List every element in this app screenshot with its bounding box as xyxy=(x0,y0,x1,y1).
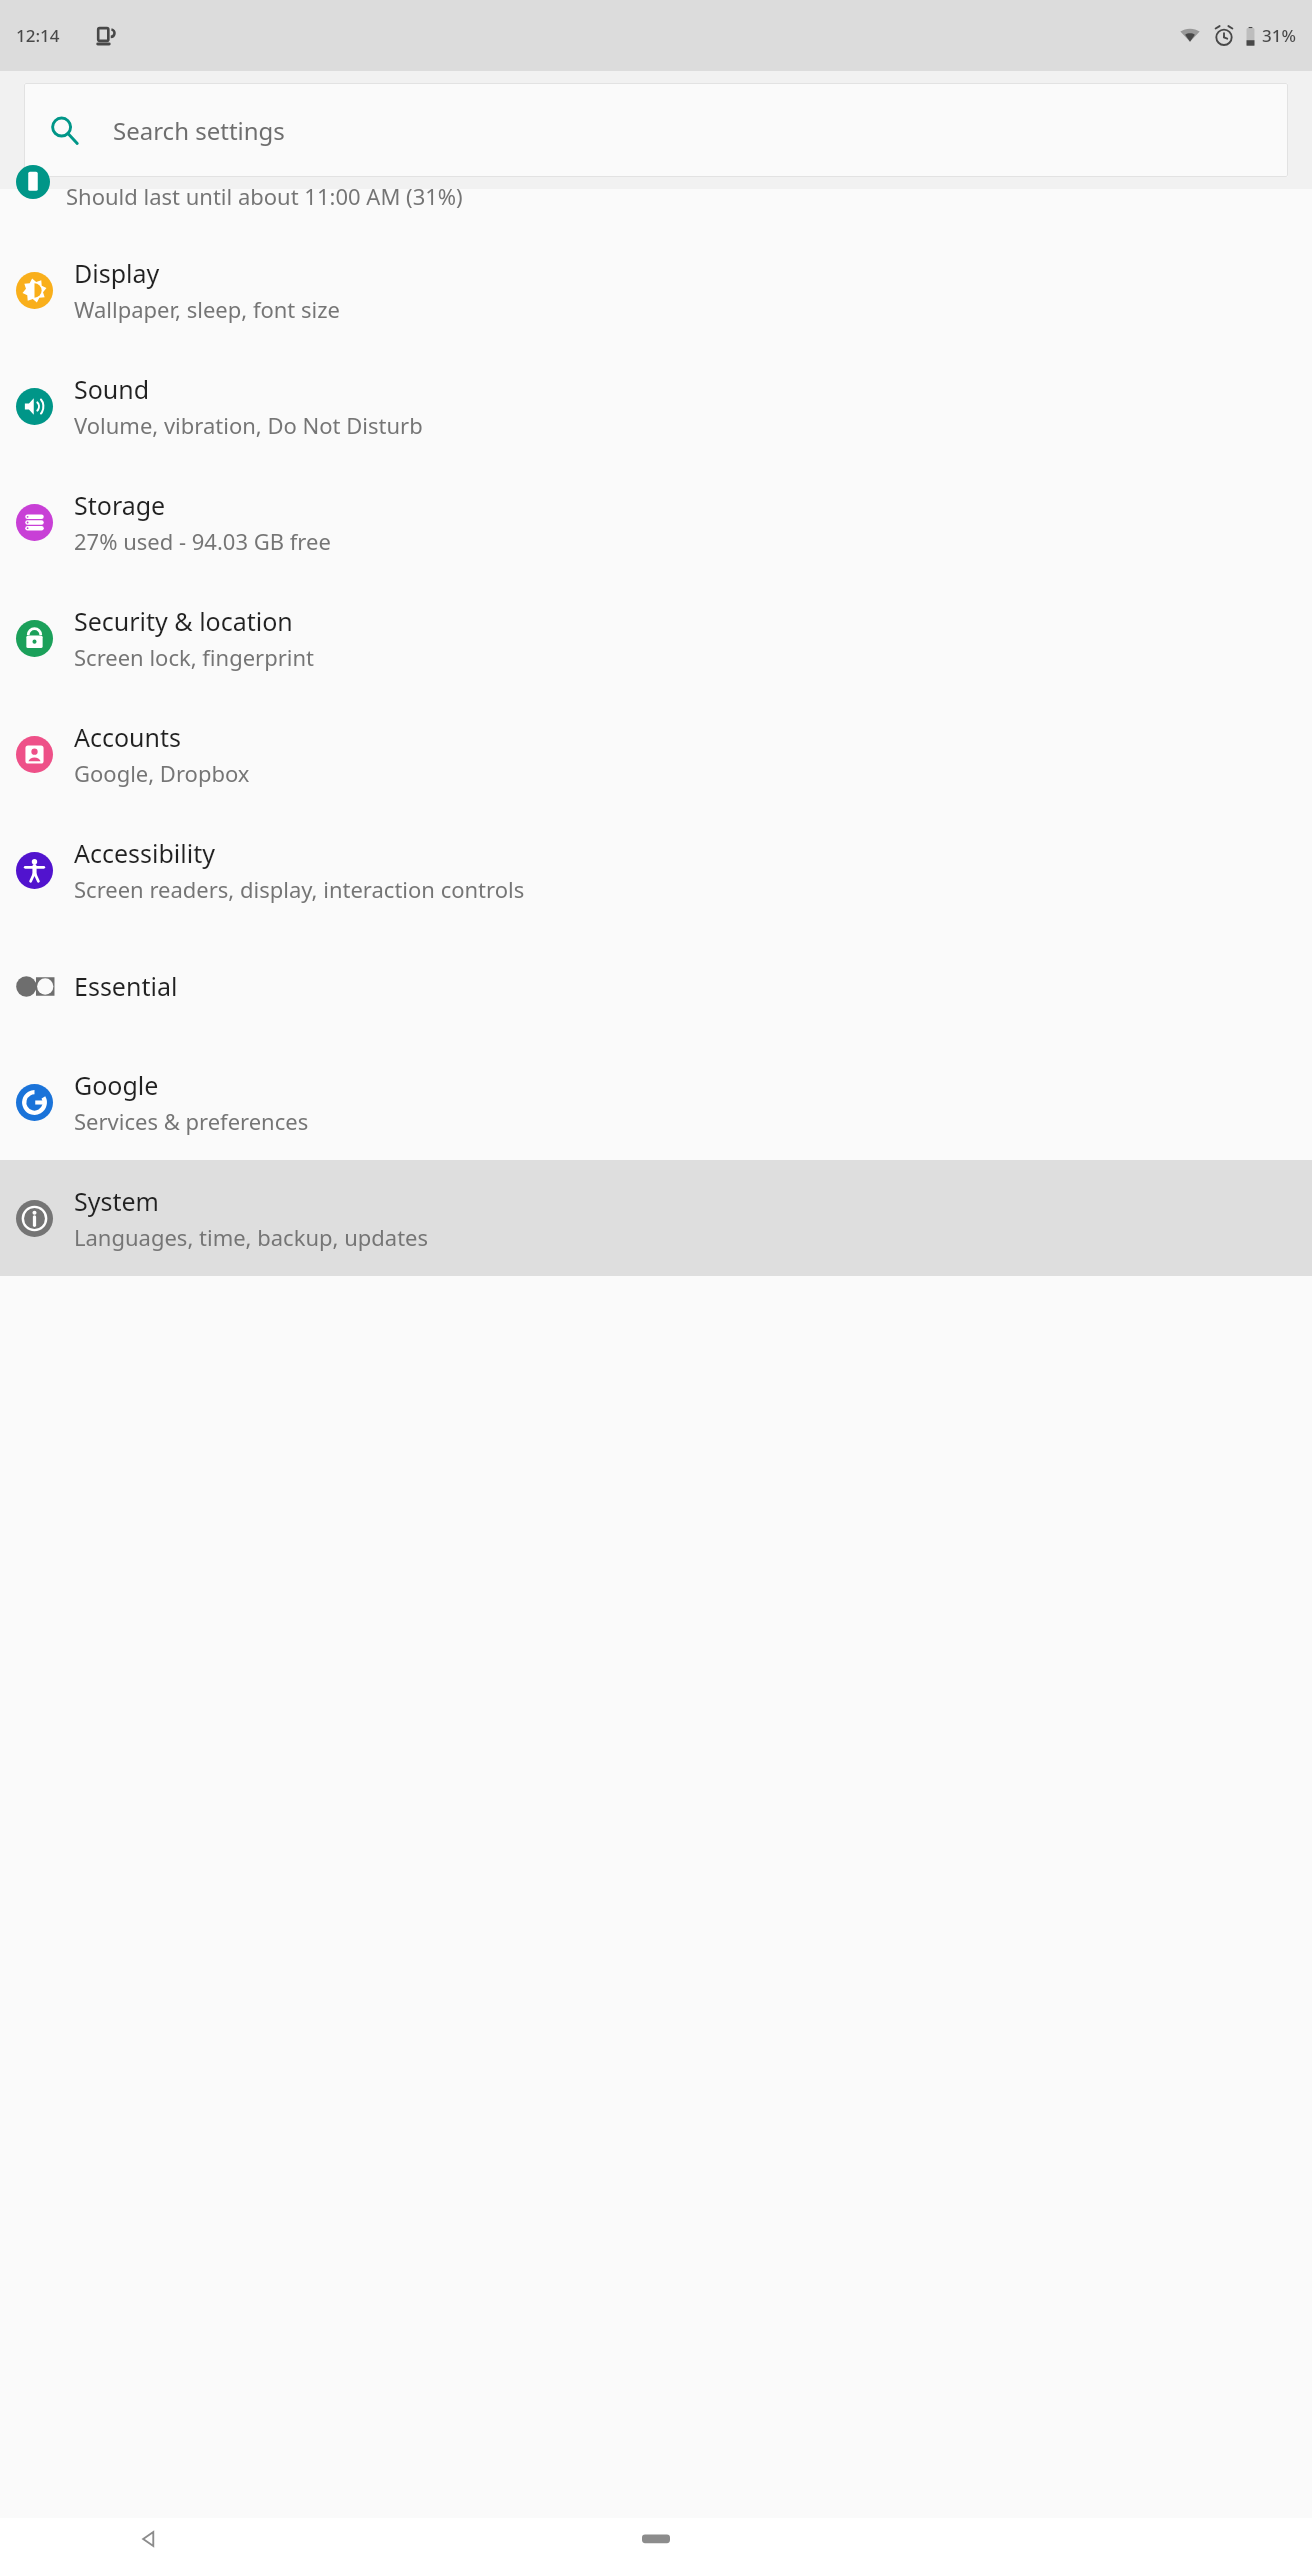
button[interactable]: Should last until about 11:00 AM (31%) xyxy=(0,189,1312,232)
staticText: Sound xyxy=(74,372,150,406)
staticText: Display xyxy=(74,256,160,290)
button[interactable]: Google xyxy=(0,1044,1312,1160)
staticText: 27% used - 94.03 GB free xyxy=(74,526,331,556)
staticText: Accessibility xyxy=(74,836,215,870)
staticText: Search settings xyxy=(113,114,285,147)
staticText: 31% xyxy=(1262,24,1296,47)
staticText: Services & preferences xyxy=(74,1106,309,1136)
button[interactable]: Accessibility xyxy=(0,812,1312,928)
staticText: System xyxy=(74,1184,159,1218)
staticText: Google, Dropbox xyxy=(74,758,250,788)
button[interactable]: System xyxy=(0,1160,1312,1276)
button[interactable]: Back xyxy=(126,2518,170,2560)
staticText: Languages, time, backup, updates xyxy=(74,1222,429,1252)
button[interactable]: Security & location xyxy=(0,580,1312,696)
button[interactable]: Accounts xyxy=(0,696,1312,812)
staticText: Accounts xyxy=(74,720,182,754)
staticText: Volume, vibration, Do Not Disturb xyxy=(74,410,423,440)
button[interactable]: Essential xyxy=(0,928,1312,1044)
staticText: Essential xyxy=(74,969,178,1003)
staticText: Storage xyxy=(74,488,166,522)
staticText: Should last until about 11:00 AM (31%) xyxy=(66,181,463,211)
button[interactable]: Sound xyxy=(0,348,1312,464)
button[interactable]: Display xyxy=(0,232,1312,348)
staticText: Screen lock, fingerprint xyxy=(74,642,315,672)
staticText: Security & location xyxy=(74,604,293,638)
staticText: Google xyxy=(74,1068,159,1102)
button[interactable]: Search settings xyxy=(24,83,1288,177)
button[interactable]: Storage xyxy=(0,464,1312,580)
button[interactable]: Home xyxy=(634,2518,678,2560)
staticText: Wallpaper, sleep, font size xyxy=(74,294,340,324)
staticText: 12:14 xyxy=(16,24,60,47)
staticText: Screen readers, display, interaction con… xyxy=(74,874,525,904)
